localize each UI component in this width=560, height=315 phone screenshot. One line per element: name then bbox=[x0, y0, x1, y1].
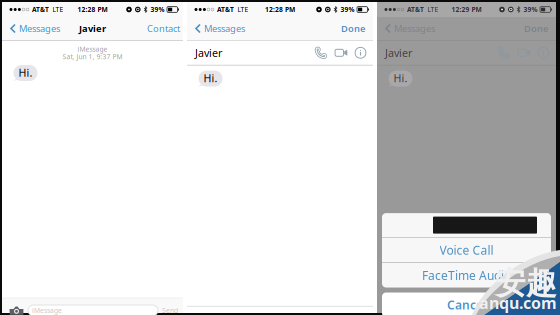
staticText: 12:28 PM bbox=[265, 5, 295, 14]
button[interactable]: FaceTime video bbox=[515, 49, 534, 56]
staticText: Contact bbox=[147, 22, 180, 35]
staticText: AT&T bbox=[217, 5, 234, 14]
button[interactable]: Take photo bbox=[9, 306, 24, 315]
staticText: Hi. bbox=[393, 71, 407, 85]
staticText: Javier bbox=[385, 46, 412, 60]
button[interactable]: Send bbox=[162, 306, 178, 315]
button[interactable]: Messages bbox=[8, 18, 62, 38]
button[interactable]: Voice call bbox=[310, 46, 332, 59]
staticText: Done bbox=[524, 22, 548, 35]
button[interactable]: Details bbox=[351, 47, 366, 58]
staticText: Javier bbox=[79, 22, 106, 35]
button[interactable]: FaceTime Audio bbox=[382, 263, 551, 287]
button[interactable]: Contact bbox=[145, 18, 182, 38]
staticText: Sat, Jun 1, 9:37 PM bbox=[62, 52, 122, 61]
staticText: LTE bbox=[52, 5, 63, 14]
staticText: Send bbox=[162, 306, 178, 315]
staticText: 12:29 PM bbox=[451, 5, 481, 14]
staticText: Javier bbox=[195, 46, 222, 60]
staticText: 12:28 PM bbox=[77, 5, 107, 14]
staticText: iMessage bbox=[32, 306, 62, 315]
staticText: 39% bbox=[150, 5, 164, 14]
staticText: Voice Call bbox=[439, 242, 493, 258]
staticText: 39% bbox=[340, 5, 354, 14]
staticText: Messages bbox=[394, 22, 435, 35]
staticText: Messages bbox=[19, 22, 60, 35]
staticText: Done bbox=[341, 22, 365, 35]
staticText: 39% bbox=[523, 5, 537, 14]
button[interactable]: Messages bbox=[193, 18, 247, 38]
staticText: Messages bbox=[204, 22, 245, 35]
staticText: LTE bbox=[237, 5, 248, 14]
button[interactable]: Voice Call bbox=[382, 238, 551, 262]
button[interactable]: Cancel bbox=[382, 292, 551, 315]
staticText: 安趣 bbox=[495, 264, 557, 302]
button[interactable]: Details bbox=[534, 47, 549, 58]
staticText: FaceTime Audio bbox=[422, 267, 511, 283]
button[interactable]: Voice call bbox=[493, 46, 515, 59]
staticText: iMessage bbox=[77, 45, 107, 54]
button[interactable]: FaceTime video bbox=[332, 49, 351, 56]
staticText: AT&T bbox=[407, 5, 424, 14]
staticText: anqu.com bbox=[479, 292, 557, 313]
staticText: Hi. bbox=[203, 71, 217, 85]
button[interactable]: Done bbox=[339, 18, 367, 38]
staticText: Hi. bbox=[18, 65, 32, 80]
staticText: LTE bbox=[427, 5, 438, 14]
staticText: AT&T bbox=[32, 5, 49, 14]
staticText: Cancel bbox=[447, 297, 486, 313]
